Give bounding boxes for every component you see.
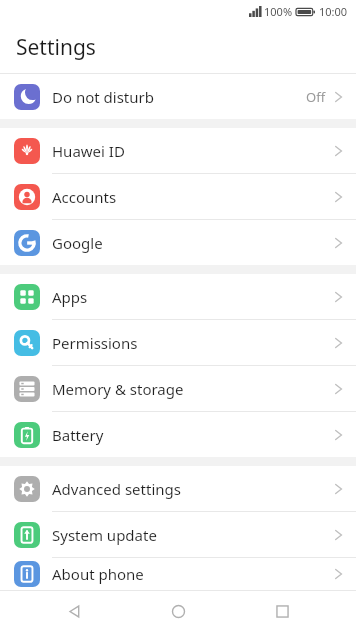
staticText: Huawei ID — [52, 141, 335, 161]
button[interactable]: Accounts — [0, 174, 356, 219]
staticText: Settings — [16, 33, 96, 62]
staticText: 10:00 — [319, 4, 348, 19]
staticText: Off — [306, 88, 326, 106]
button[interactable]: Home — [148, 591, 208, 632]
staticText: Advanced settings — [52, 479, 335, 499]
staticText: System update — [52, 525, 335, 545]
staticText: Do not disturb — [52, 87, 306, 107]
staticText: Permissions — [52, 333, 335, 353]
staticText: Accounts — [52, 187, 335, 207]
button[interactable]: Do not disturb — [0, 74, 356, 119]
button[interactable]: About phone — [0, 558, 356, 590]
staticText: Battery — [52, 425, 335, 445]
button[interactable]: Recent apps — [252, 591, 312, 632]
button[interactable]: Permissions — [0, 320, 356, 365]
button[interactable]: Advanced settings — [0, 466, 356, 511]
button[interactable]: Battery — [0, 412, 356, 457]
staticText: 100% — [264, 4, 293, 19]
button[interactable]: Huawei ID — [0, 128, 356, 173]
staticText: About phone — [52, 564, 335, 584]
staticText: Google — [52, 233, 335, 253]
button[interactable]: Memory & storage — [0, 366, 356, 411]
staticText: Memory & storage — [52, 379, 335, 399]
button[interactable]: System update — [0, 512, 356, 557]
staticText: Apps — [52, 287, 335, 307]
button[interactable]: Google — [0, 220, 356, 265]
button[interactable]: Back — [44, 591, 104, 632]
button[interactable]: Apps — [0, 274, 356, 319]
